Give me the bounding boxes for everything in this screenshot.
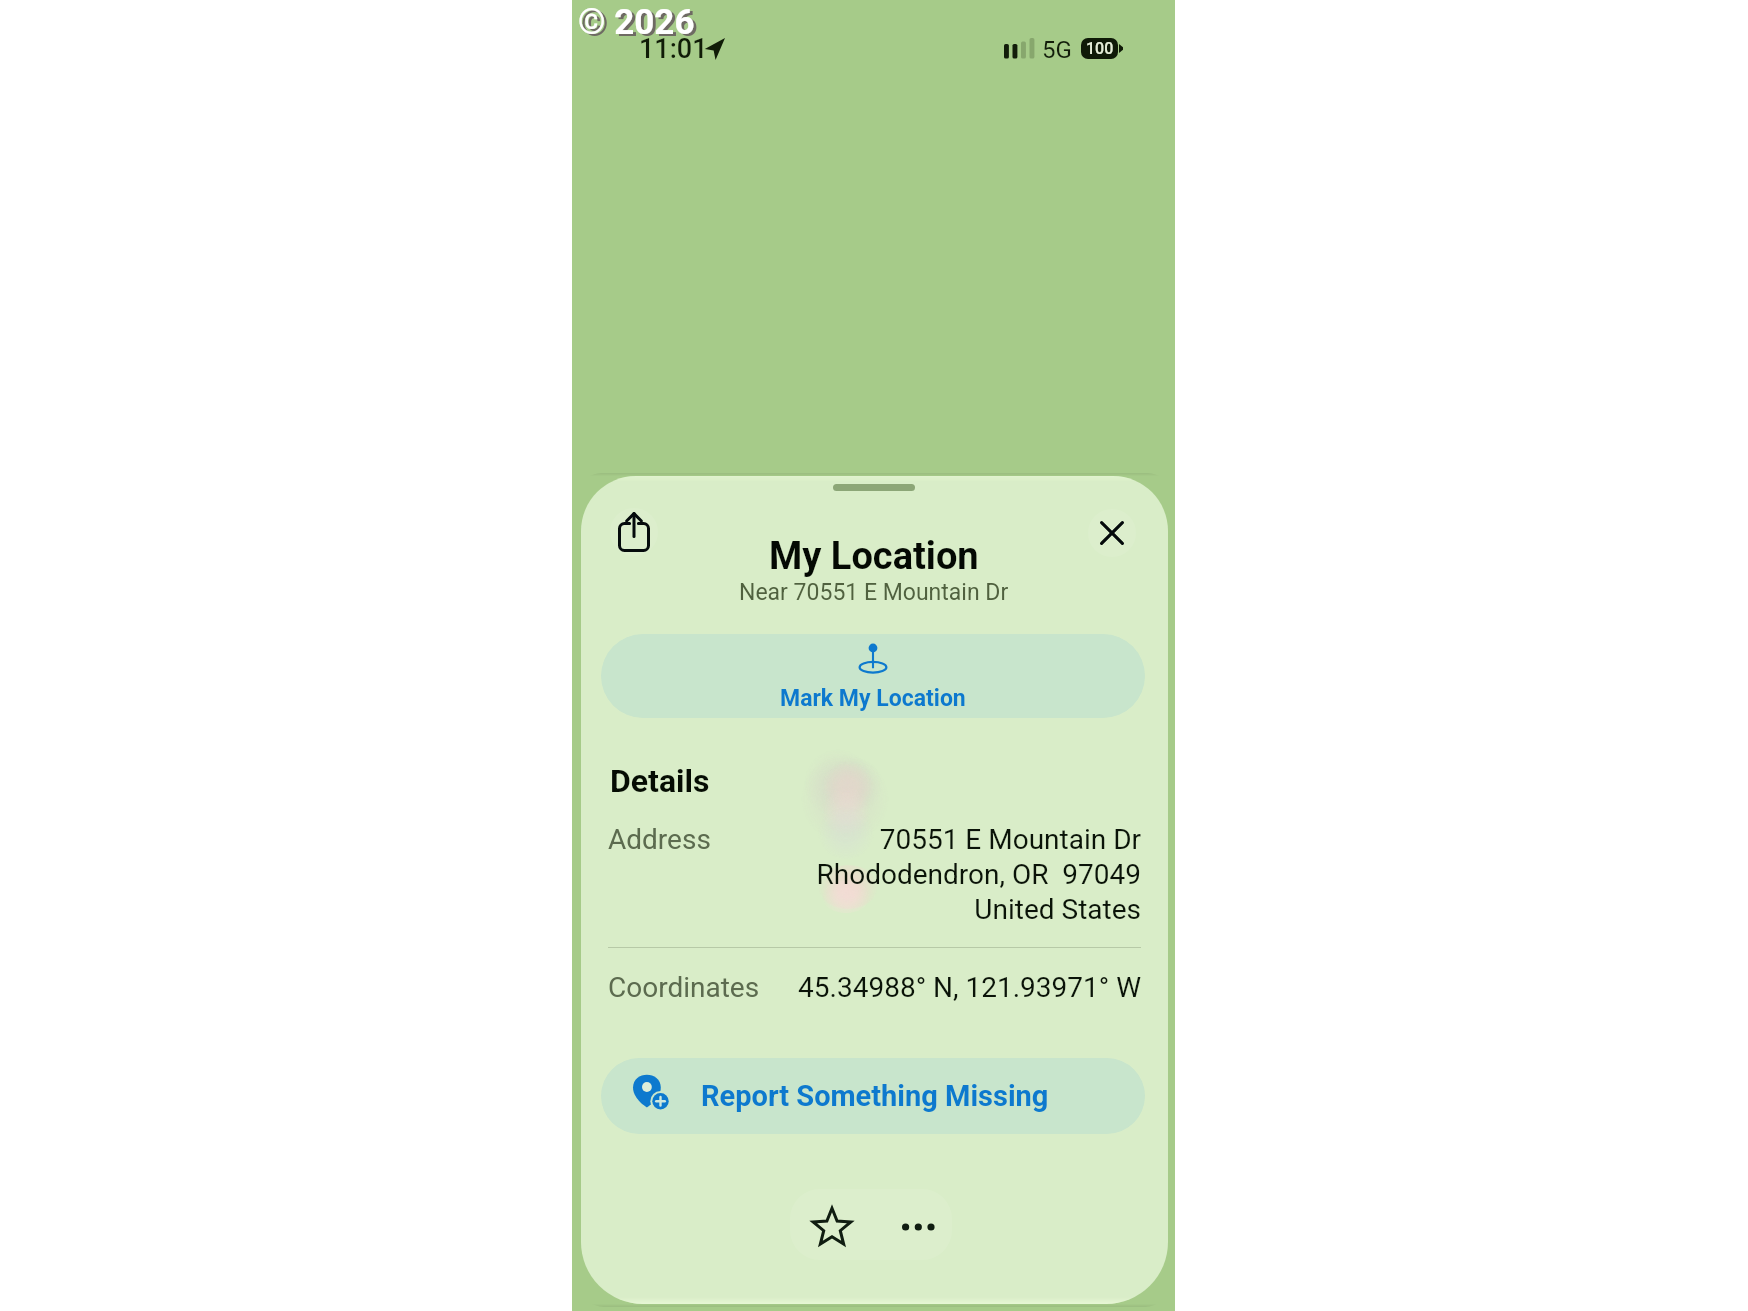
button[interactable]: Share [610, 508, 658, 556]
staticText: Mark My Location [780, 685, 966, 712]
staticText: 100 [1086, 39, 1114, 58]
staticText: © 2026 [581, 4, 698, 45]
staticText: 5G [1042, 36, 1072, 64]
staticText: 70551 E Mountain Dr Rhododendron, OR 970… [711, 823, 1141, 926]
staticText: 11:01 [639, 33, 708, 65]
staticText: Address [608, 823, 711, 856]
staticText: Coordinates [608, 971, 760, 1004]
staticText: © 2026 [578, 2, 695, 43]
button[interactable]: Mark My Location [601, 634, 1145, 718]
staticText: Near 70551 E Mountain Dr [739, 579, 1009, 606]
staticText: 45.34988° N, 121.93971° W [760, 971, 1141, 1004]
button[interactable]: Report Something Missing [601, 1058, 1145, 1134]
staticText: Report Something Missing [701, 1079, 1049, 1113]
button[interactable]: More options [898, 1207, 938, 1247]
button[interactable]: Favorite [808, 1204, 856, 1252]
staticText: My Location [769, 534, 979, 579]
staticText: Details [610, 762, 710, 800]
button[interactable]: Close [1088, 509, 1136, 557]
